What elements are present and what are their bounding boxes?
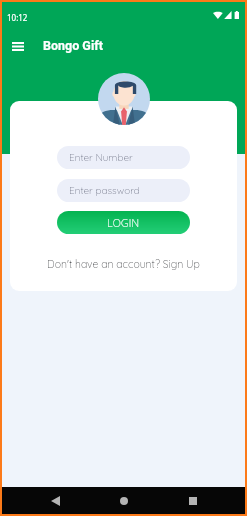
button[interactable]: LOGIN	[57, 211, 190, 234]
staticText: Bongo Gift	[43, 38, 103, 53]
staticText: Enter password	[69, 184, 140, 197]
staticText: Enter Number	[69, 151, 133, 164]
button[interactable]: Enter Number	[57, 146, 190, 169]
staticText: LOGIN	[107, 216, 140, 229]
button[interactable]: Enter password	[57, 179, 190, 202]
button[interactable]: Open navigation menu	[7, 35, 29, 57]
button[interactable]: Home	[112, 489, 136, 513]
button[interactable]: Don't have an account? Sign Up	[47, 257, 200, 270]
staticText: 10:12	[7, 12, 28, 23]
button[interactable]: Recent apps	[181, 489, 205, 513]
button[interactable]: Back	[43, 489, 67, 513]
